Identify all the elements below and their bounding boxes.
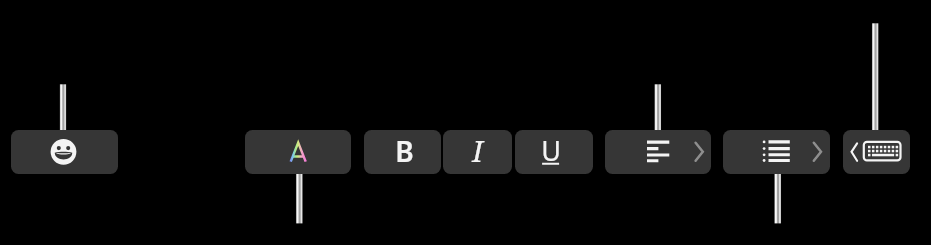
staticText: I [443, 131, 512, 174]
button[interactable]: Text colour [245, 130, 351, 174]
button[interactable]: Alignment [605, 130, 711, 174]
button[interactable]: Bold [364, 130, 441, 174]
button[interactable]: Hide keyboard [843, 130, 910, 174]
button[interactable]: Underline [515, 130, 593, 174]
button[interactable]: Emoji [11, 130, 118, 174]
button[interactable]: Italic [443, 130, 512, 174]
staticText: B [366, 132, 441, 174]
button[interactable]: Lists [723, 130, 830, 174]
staticText: U [515, 132, 590, 174]
